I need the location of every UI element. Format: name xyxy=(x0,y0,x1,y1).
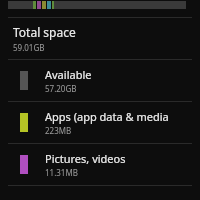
button[interactable]: Pictures, videos xyxy=(0,144,200,185)
staticText: Apps (app data & media content) xyxy=(45,109,196,124)
staticText: 11.31MB xyxy=(45,167,78,178)
staticText: Available xyxy=(45,67,92,82)
staticText: Total space xyxy=(13,24,76,40)
button[interactable]: Apps (app data & media content) xyxy=(0,102,200,143)
staticText: 223MB xyxy=(45,125,72,136)
staticText: Pictures, videos xyxy=(45,151,126,166)
staticText: 57.20GB xyxy=(45,83,77,94)
button[interactable]: Total space xyxy=(0,18,200,59)
staticText: 59.01GB xyxy=(13,42,45,53)
button[interactable]: Storage usage breakdown xyxy=(8,1,186,9)
button[interactable]: Available xyxy=(0,60,200,101)
